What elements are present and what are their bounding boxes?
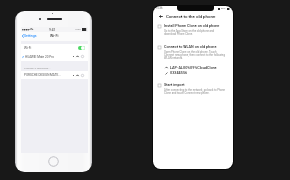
staticText: Clone and touch Connect new phone.: [164, 91, 210, 94]
button[interactable]: LAP-AL00%09%CloudClone: [165, 66, 217, 70]
staticText: After connecting to the network, go back…: [164, 88, 225, 91]
staticText: LAP-AL00%09%CloudClone: [170, 66, 217, 70]
button[interactable]: Home: [48, 156, 59, 167]
staticText: Connect to WLAN on old phone: [164, 45, 217, 49]
button[interactable]: 03344556: [165, 71, 188, 75]
staticText: Connect new phone, then connect to the f…: [164, 53, 225, 56]
button[interactable]: Back: [158, 14, 163, 19]
staticText: HUAWEI Mate 20 Pro: [25, 55, 54, 59]
staticText: PORSCHE DESIGN MATE...: [24, 73, 61, 77]
staticText: CHOOSE A NETWORK...: [24, 67, 51, 70]
staticText: Settings: [24, 34, 37, 38]
staticText: 03344556: [170, 71, 188, 75]
button[interactable]: HUAWEI Mate 20 Pro: [21, 52, 88, 61]
staticText: download Phone Clone.: [164, 32, 193, 35]
staticText: 100%: [75, 28, 81, 31]
staticText: Install Phone Clone on old phone: [164, 24, 220, 28]
staticText: Connect to the old phone: [166, 14, 216, 19]
button[interactable]: Wi-Fi toggle: [78, 46, 85, 50]
staticText: Open Phone Clone on the old phone. Touch: [164, 50, 217, 53]
staticText: 10:36: [156, 7, 163, 10]
button[interactable]: Install Phone Clone on old phone: [158, 24, 229, 35]
staticText: Wi-Fi: [50, 34, 59, 38]
button[interactable]: Wi-Fi: [21, 44, 88, 52]
staticText: WLAN network.: [164, 56, 183, 59]
staticText: 88%: [221, 7, 226, 10]
staticText: Wi-Fi: [24, 46, 32, 50]
staticText: Go to the App Store on the old phone and: [164, 29, 215, 32]
staticText: 9:41: [49, 28, 56, 32]
button[interactable]: Start import: [158, 83, 229, 94]
button[interactable]: Settings: [22, 34, 37, 38]
button[interactable]: Connect to WLAN on old phone: [158, 45, 229, 59]
staticText: Start import: [164, 83, 185, 87]
button[interactable]: PORSCHE DESIGN MATE...: [21, 71, 88, 79]
